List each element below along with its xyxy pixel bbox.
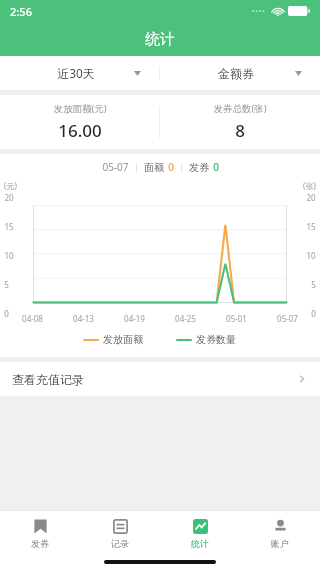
button[interactable]: 查看充值记录: [0, 362, 320, 396]
other: 发券: [32, 518, 49, 535]
other: 记录: [112, 518, 129, 535]
staticText: 04-25: [175, 313, 196, 324]
staticText: 0: [168, 160, 174, 174]
other: 账户: [272, 518, 289, 535]
staticText: 2:56: [10, 4, 32, 19]
staticText: 金额券: [218, 66, 254, 81]
staticText: (元): [4, 180, 17, 191]
button[interactable]: 账户: [240, 518, 320, 549]
staticText: 查看充值记录: [12, 372, 84, 387]
button[interactable]: 近30天: [0, 56, 159, 90]
staticText: (张): [303, 180, 316, 191]
staticText: 20: [4, 192, 14, 203]
staticText: 账户: [271, 538, 289, 549]
staticText: 记录: [111, 538, 129, 549]
button[interactable]: 记录: [80, 518, 160, 549]
staticText: 发券数量: [196, 333, 236, 346]
staticText: 15: [306, 221, 316, 232]
staticText: 发券: [189, 161, 209, 174]
staticText: 05-07: [102, 160, 129, 174]
staticText: 04-13: [73, 313, 94, 324]
staticText: 发券: [31, 538, 49, 549]
staticText: 10: [4, 250, 14, 261]
staticText: 统计: [145, 30, 175, 49]
staticText: 15: [4, 221, 14, 232]
staticText: 04-19: [124, 313, 145, 324]
staticText: 8: [235, 119, 245, 142]
staticText: 0: [311, 308, 316, 319]
staticText: 5: [311, 279, 316, 290]
staticText: 05-01: [226, 313, 247, 324]
staticText: 20: [306, 192, 316, 203]
staticText: 05-07: [277, 313, 298, 324]
staticText: 0: [4, 308, 9, 319]
staticText: 0: [213, 160, 219, 174]
staticText: 统计: [191, 538, 209, 549]
button[interactable]: 金额券: [160, 56, 320, 90]
staticText: 5: [4, 279, 9, 290]
staticText: 发券总数(张): [213, 102, 267, 115]
staticText: 发放面额(元): [53, 102, 107, 115]
staticText: 近30天: [57, 65, 95, 81]
button[interactable]: 统计: [160, 518, 240, 549]
staticText: 面额: [144, 161, 164, 174]
button[interactable]: 发券: [0, 518, 80, 549]
staticText: 04-08: [22, 313, 43, 324]
staticText: 10: [306, 250, 316, 261]
staticText: 发放面额: [103, 333, 143, 346]
other: 统计: [192, 518, 209, 535]
staticText: 16.00: [58, 119, 102, 142]
